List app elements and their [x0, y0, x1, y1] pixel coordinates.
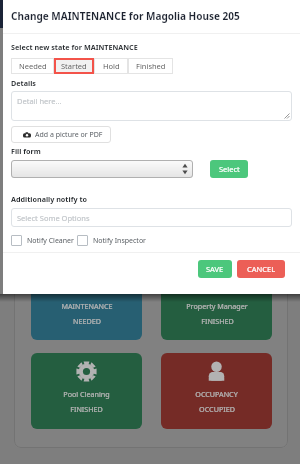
staticText: FINISHED [70, 404, 103, 414]
staticText: Detail here... [17, 96, 62, 106]
staticText: CANCEL [247, 264, 276, 274]
button[interactable]: Finished [128, 58, 173, 74]
staticText: Notify Cleaner [27, 236, 74, 246]
button[interactable]: Hold [94, 58, 128, 74]
staticText: Additionally notify to [11, 194, 88, 204]
button[interactable]: MAINTENANCE [31, 287, 142, 340]
button[interactable]: Select [210, 160, 248, 178]
staticText: Details [11, 78, 36, 88]
button[interactable]: OCCUPANCY [161, 353, 272, 429]
button[interactable]: Property Manager [161, 287, 272, 340]
button[interactable]: Select a form [11, 160, 193, 178]
button[interactable]: Pool Cleaning [31, 353, 142, 429]
staticText: Select new state for MAINTENANCE [11, 42, 138, 52]
staticText: Notify Inspector [93, 236, 147, 246]
staticText: Hold [103, 61, 120, 71]
staticText: Fill form [11, 146, 41, 156]
button[interactable]: Select Some Options [11, 208, 292, 227]
staticText: FINISHED [201, 316, 234, 326]
staticText: Pool Cleaning [63, 389, 110, 399]
button[interactable]: Notify Inspector [77, 235, 147, 246]
staticText: Add a picture or PDF [35, 130, 103, 140]
button[interactable]: SAVE [198, 260, 232, 278]
staticText: OCCUPANCY [195, 389, 238, 399]
staticText: Started [61, 61, 87, 71]
staticText: Finished [136, 61, 166, 71]
staticText: Change MAINTENANCE for Magolia House 205 [11, 9, 240, 23]
button[interactable]: Needed [11, 58, 54, 74]
staticText: Needed [19, 61, 47, 71]
button[interactable]: CANCEL [237, 260, 285, 278]
staticText: NEEDED [73, 316, 101, 326]
staticText: Select [219, 164, 240, 174]
button[interactable]: Add a picture or PDF [11, 126, 111, 143]
button[interactable]: Detail here... [11, 91, 292, 121]
button[interactable]: Notify Cleaner [11, 235, 74, 246]
staticText: MAINTENANCE [61, 301, 113, 311]
button[interactable]: Started [54, 58, 94, 74]
staticText: OCCUPIED [199, 404, 235, 414]
staticText: SAVE [206, 264, 224, 274]
staticText: Select Some Options [17, 213, 90, 223]
staticText: Property Manager [186, 301, 248, 311]
